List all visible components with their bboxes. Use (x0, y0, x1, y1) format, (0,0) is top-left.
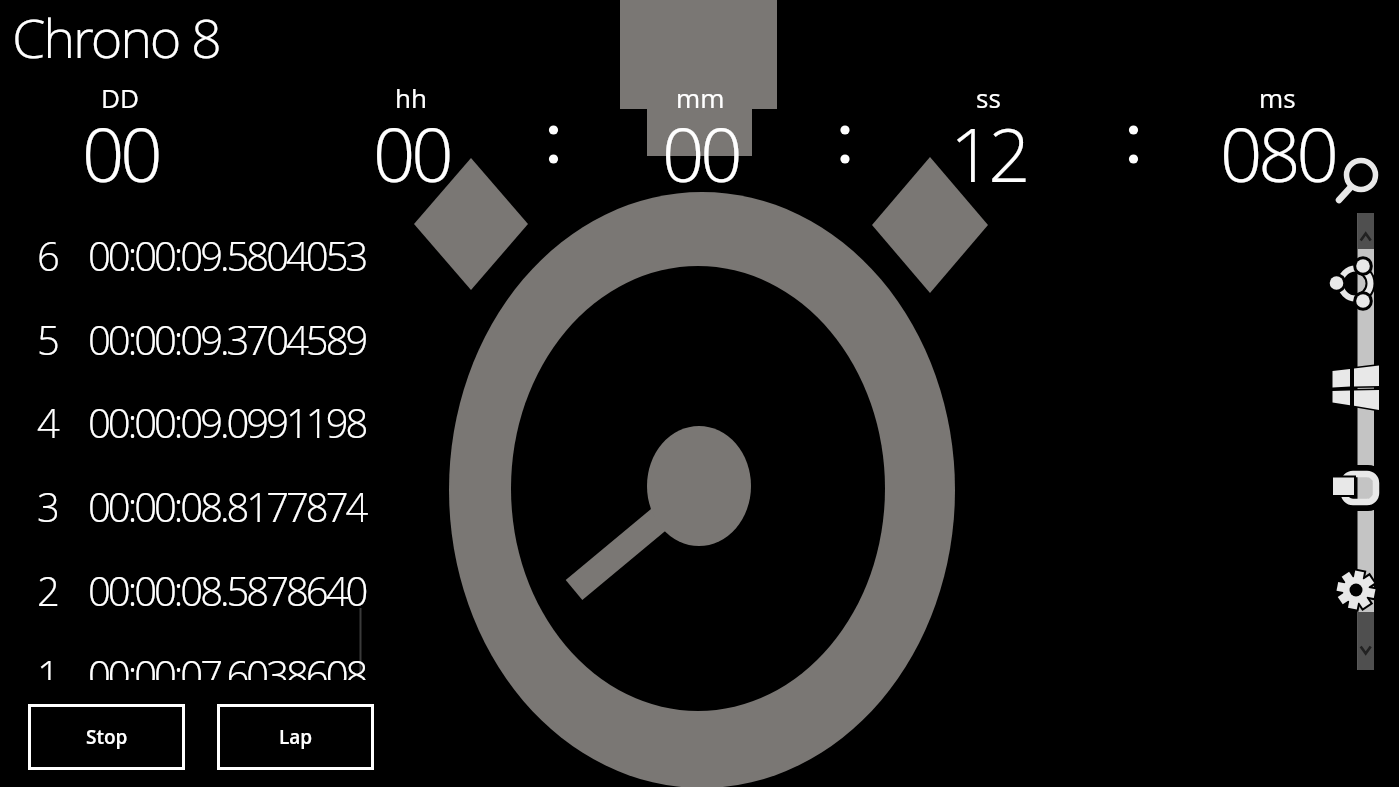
button[interactable] (1332, 364, 1380, 412)
staticText: 6 (37, 228, 58, 282)
staticText: 080 (1220, 103, 1335, 204)
staticText: 00:00:09.5804053 (88, 228, 366, 282)
staticText: 00:00:09.3704589 (88, 312, 366, 366)
staticText: 12 (950, 103, 1027, 204)
button[interactable]: 4 (20, 395, 380, 449)
staticText: 5 (37, 312, 58, 366)
staticText: 4 (37, 395, 58, 449)
staticText: 3 (37, 479, 58, 533)
button[interactable] (1334, 568, 1378, 612)
staticText: DD (101, 80, 139, 115)
staticText: mm (676, 80, 725, 115)
staticText: ss (976, 80, 1001, 115)
staticText: 00 (373, 103, 450, 204)
staticText: 00:00:07.6038608 (88, 647, 366, 680)
button[interactable]: 6 (20, 228, 380, 282)
staticText: hh (395, 80, 427, 115)
button[interactable]: 5 (20, 312, 380, 366)
staticText: 1 (37, 647, 58, 680)
button[interactable]: Stop (28, 704, 185, 770)
staticText: 00 (82, 103, 159, 204)
button[interactable] (1334, 261, 1378, 305)
staticText: 00 (662, 103, 739, 204)
button[interactable]: Lap (217, 704, 374, 770)
staticText: ms (1259, 80, 1296, 115)
staticText: 00:00:08.5878640 (88, 563, 366, 617)
staticText: Stop (86, 724, 128, 750)
staticText: 00:00:08.8177874 (88, 479, 366, 533)
button[interactable] (1331, 468, 1379, 516)
staticText: 00:00:09.0991198 (88, 395, 366, 449)
staticText: Lap (279, 724, 313, 750)
button[interactable]: 3 (20, 479, 380, 533)
button[interactable]: 1 (20, 647, 380, 680)
staticText: 2 (37, 563, 58, 617)
button[interactable] (1338, 155, 1382, 199)
staticText: Chrono 8 (12, 0, 220, 74)
button[interactable]: 2 (20, 563, 380, 617)
